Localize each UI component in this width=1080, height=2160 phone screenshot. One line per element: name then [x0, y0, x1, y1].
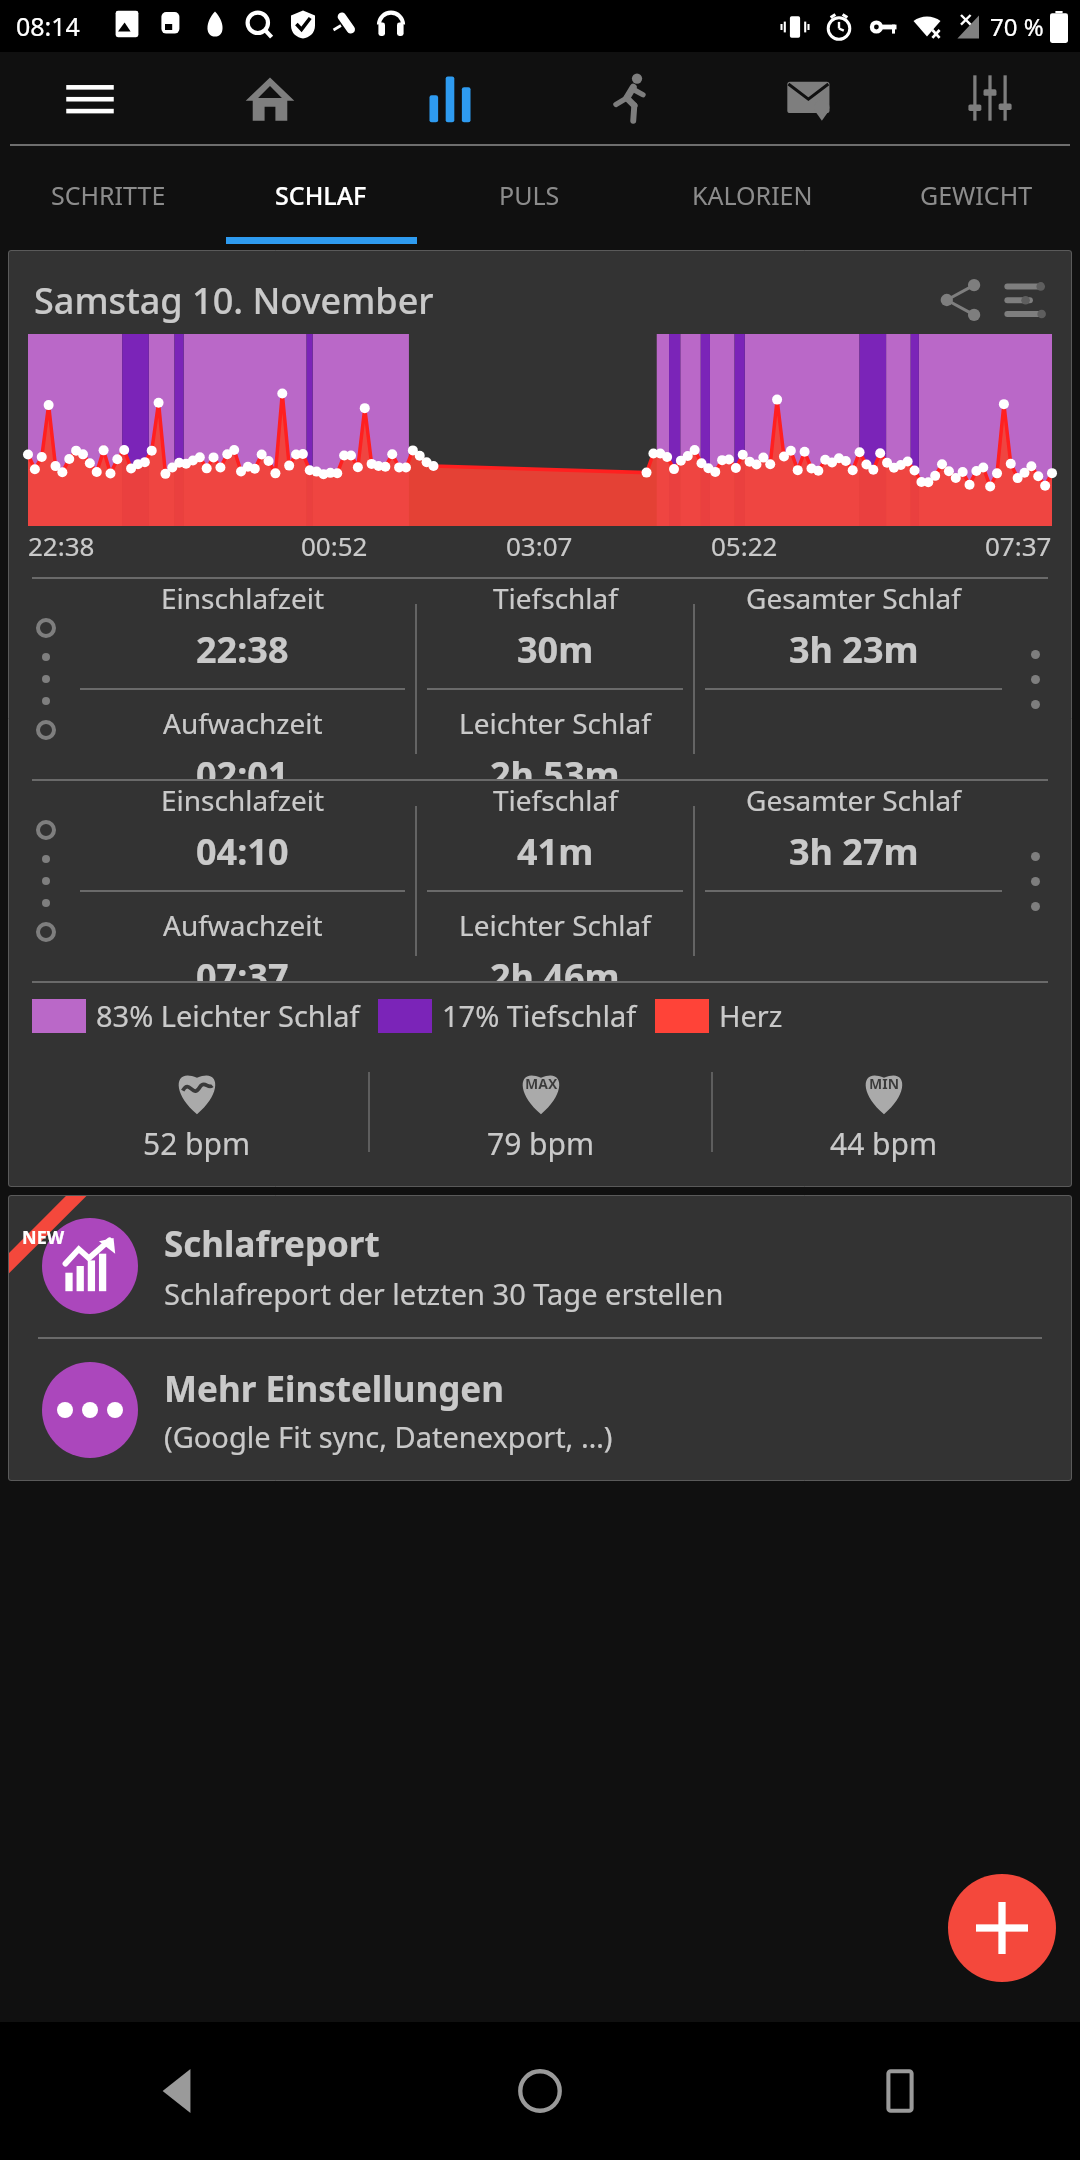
- staticText: 41m: [517, 827, 594, 876]
- button[interactable]: Statistics: [360, 52, 540, 144]
- staticText: 00:52: [301, 528, 368, 563]
- staticText: 04:10: [196, 827, 289, 876]
- staticText: 07:37: [985, 528, 1052, 563]
- staticText: MAX: [525, 1074, 558, 1093]
- staticText: Einschlafzeit: [161, 781, 325, 819]
- button[interactable]: Messages: [720, 52, 900, 144]
- staticText: NEW: [22, 1225, 65, 1250]
- staticText: Samstag 10. November: [34, 276, 434, 325]
- button[interactable]: Home: [180, 52, 360, 144]
- staticText: 03:07: [506, 528, 573, 563]
- button[interactable]: Home: [360, 2022, 720, 2160]
- staticText: 52 bpm: [143, 1123, 251, 1164]
- staticText: 02:01: [196, 750, 289, 779]
- staticText: 08:14: [16, 9, 80, 43]
- button[interactable]: Back: [0, 2022, 360, 2160]
- button[interactable]: Activity: [540, 52, 720, 144]
- button[interactable]: Menu: [0, 52, 180, 144]
- staticText: Leichter Schlaf: [459, 704, 651, 742]
- staticText: MIN: [869, 1074, 900, 1093]
- button[interactable]: More options: [1012, 579, 1058, 779]
- staticText: Gesamter Schlaf: [746, 781, 961, 819]
- button[interactable]: Settings: [900, 52, 1080, 144]
- staticText: Einschlafzeit: [161, 579, 325, 617]
- button[interactable]: GEWICHT: [872, 146, 1080, 244]
- staticText: PULS: [499, 178, 560, 212]
- button[interactable]: Recents: [720, 2022, 1080, 2160]
- staticText: 22:38: [28, 528, 95, 563]
- staticText: 22:38: [196, 625, 289, 674]
- staticText: Gesamter Schlaf: [746, 579, 961, 617]
- button[interactable]: PULS: [425, 146, 633, 244]
- staticText: Schlafreport der letzten 30 Tage erstell…: [164, 1274, 724, 1313]
- staticText: 17% Tiefschlaf: [442, 996, 637, 1035]
- button[interactable]: SCHRITTE: [0, 146, 217, 244]
- staticText: 2h 46m: [490, 952, 620, 981]
- staticText: Aufwachzeit: [163, 906, 323, 944]
- staticText: Tiefschlaf: [493, 781, 618, 819]
- staticText: 2h 53m: [490, 750, 620, 779]
- staticText: SCHLAF: [275, 178, 367, 212]
- button[interactable]: Share: [932, 272, 988, 328]
- staticText: Schlafreport: [164, 1220, 380, 1268]
- staticText: Leichter Schlaf: [459, 906, 651, 944]
- button[interactable]: KALORIEN: [633, 146, 872, 244]
- staticText: Mehr Einstellungen: [164, 1365, 504, 1413]
- button[interactable]: SCHLAF: [217, 146, 425, 244]
- staticText: Herz: [719, 996, 783, 1035]
- staticText: 3h 23m: [789, 625, 919, 674]
- staticText: 83% Leichter Schlaf: [96, 996, 360, 1035]
- staticText: 70 %: [990, 10, 1044, 43]
- button[interactable]: Mehr Einstellungen: [8, 1339, 1072, 1481]
- staticText: (Google Fit sync, Datenexport, …): [164, 1417, 613, 1456]
- button[interactable]: Schlafreport: [8, 1195, 1072, 1337]
- button[interactable]: Add: [948, 1874, 1056, 1982]
- staticText: 07:37: [196, 952, 289, 981]
- staticText: KALORIEN: [692, 178, 813, 212]
- staticText: 30m: [517, 625, 594, 674]
- staticText: 79 bpm: [487, 1123, 595, 1164]
- staticText: 44 bpm: [830, 1123, 938, 1164]
- staticText: SCHRITTE: [51, 178, 166, 212]
- staticText: 3h 27m: [789, 827, 919, 876]
- staticText: Tiefschlaf: [493, 579, 618, 617]
- staticText: Aufwachzeit: [163, 704, 323, 742]
- button[interactable]: More options: [1012, 781, 1058, 981]
- staticText: GEWICHT: [920, 178, 1033, 212]
- button[interactable]: Filter: [998, 272, 1054, 328]
- staticText: 05:22: [711, 528, 778, 563]
